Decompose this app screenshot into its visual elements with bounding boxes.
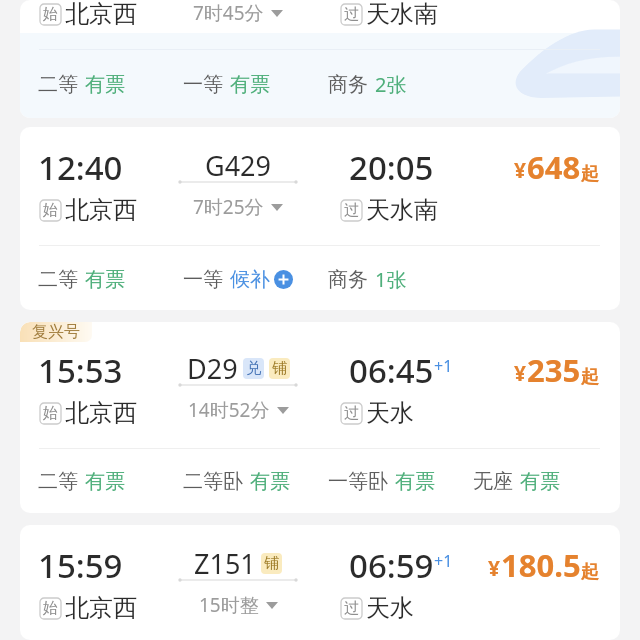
staticText: 始	[43, 404, 58, 423]
staticText: 商务	[328, 72, 368, 97]
staticText: 06:59	[349, 543, 434, 588]
staticText: 起	[581, 163, 599, 186]
staticText: 15时整	[199, 592, 259, 618]
staticText: 7时25分	[193, 194, 264, 220]
button[interactable]: 复兴号	[20, 322, 620, 513]
staticText: 起	[581, 561, 599, 584]
staticText: 有票	[395, 469, 435, 494]
staticText: 180.5	[501, 544, 581, 586]
staticText: 北京西	[65, 195, 137, 225]
button[interactable]: 12:40	[20, 127, 620, 310]
staticText: 一等	[183, 72, 223, 97]
staticText: 一等卧	[328, 469, 388, 494]
staticText: 一等	[183, 267, 223, 292]
staticText: 二等	[38, 267, 78, 292]
staticText: 06:45	[349, 348, 434, 393]
staticText: 过	[344, 201, 359, 220]
staticText: ¥	[488, 554, 501, 583]
staticText: 复兴号	[32, 322, 80, 342]
staticText: 北京西	[65, 398, 137, 428]
staticText: 二等	[38, 469, 78, 494]
staticText: 天水南	[366, 0, 438, 29]
staticText: 北京西	[65, 0, 137, 29]
staticText: 2张	[375, 71, 407, 98]
staticText: G429	[205, 147, 271, 184]
staticText: 二等	[38, 72, 78, 97]
staticText: D29	[187, 350, 238, 387]
staticText: 有票	[85, 469, 125, 494]
staticText: 有票	[520, 469, 560, 494]
staticText: 天水	[366, 593, 414, 623]
staticText: ¥	[514, 156, 527, 185]
staticText: 北京西	[65, 593, 137, 623]
staticText: 15:59	[38, 543, 123, 588]
staticText: 有票	[85, 267, 125, 292]
staticText: 起	[581, 366, 599, 389]
staticText: 候补	[230, 267, 270, 292]
staticText: 20:05	[349, 145, 434, 190]
staticText: 14时52分	[188, 397, 270, 423]
staticText: 648	[527, 146, 581, 188]
staticText: 铺	[272, 359, 287, 378]
staticText: 15:53	[38, 348, 123, 393]
staticText: 二等卧	[183, 469, 243, 494]
staticText: 7时45分	[193, 0, 264, 26]
button[interactable]: 始	[20, 0, 620, 118]
staticText: 兑	[246, 359, 261, 378]
staticText: 天水南	[366, 195, 438, 225]
staticText: 1张	[375, 266, 407, 293]
staticText: 铺	[264, 554, 279, 573]
staticText: 12:40	[38, 145, 123, 190]
staticText: 始	[43, 5, 58, 24]
staticText: 235	[527, 349, 581, 391]
staticText: 过	[344, 404, 359, 423]
staticText: 始	[43, 201, 58, 220]
staticText: 过	[344, 599, 359, 618]
staticText: 有票	[85, 72, 125, 97]
button[interactable]: 15:59	[20, 525, 620, 640]
staticText: 商务	[328, 267, 368, 292]
staticText: +1	[434, 355, 453, 377]
staticText: 无座	[473, 469, 513, 494]
staticText: +1	[434, 550, 453, 572]
staticText: ¥	[514, 359, 527, 388]
staticText: 过	[344, 5, 359, 24]
staticText: 有票	[230, 72, 270, 97]
staticText: 有票	[250, 469, 290, 494]
staticText: Z151	[194, 545, 256, 582]
staticText: 天水	[366, 398, 414, 428]
staticText: 始	[43, 599, 58, 618]
